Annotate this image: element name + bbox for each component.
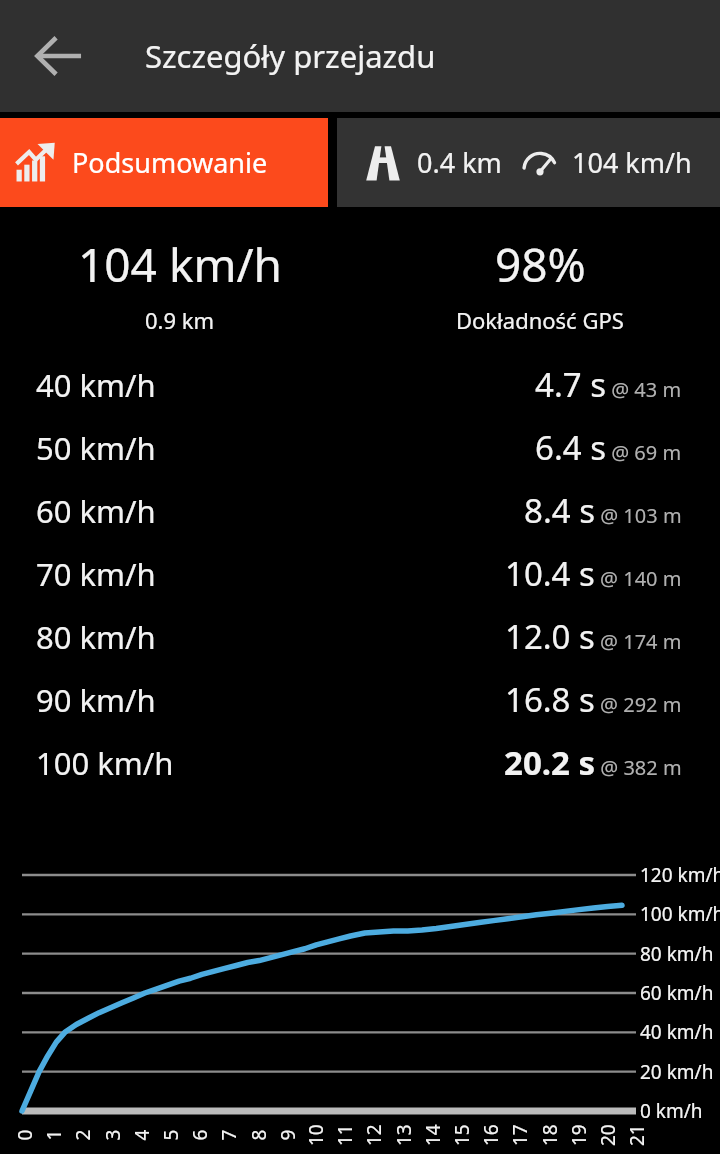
staticText: 100 km/h [640,901,720,927]
staticText: 60 km/h [640,980,714,1006]
staticText: 14 [420,1124,446,1146]
button[interactable]: Podsumowanie [0,118,328,207]
staticText: 4.7 s @ 43 m [535,362,682,407]
staticText: 120 km/h [640,862,720,888]
staticText: 12 [361,1124,387,1146]
staticText: 18 [537,1124,563,1146]
staticText: 8 [245,1129,271,1140]
staticText: 70 km/h [36,553,156,595]
staticText: 5 [157,1129,183,1140]
staticText: 20 [595,1124,621,1146]
staticText: 11 [332,1124,358,1146]
staticText: 12.0 s @ 174 m [505,614,682,659]
staticText: 17 [507,1124,533,1146]
button[interactable]: 40 km/h [0,353,720,416]
staticText: 9 [274,1129,300,1140]
staticText: 0.4 km [417,144,502,181]
staticText: 80 km/h [640,941,714,967]
staticText: 16.8 s @ 292 m [505,677,682,722]
staticText: 50 km/h [36,427,156,469]
staticText: 1 [40,1129,66,1140]
staticText: 40 km/h [640,1019,714,1045]
staticText: 20.2 s @ 382 m [504,740,682,785]
staticText: 0 [11,1129,37,1140]
staticText: 8.4 s @ 103 m [524,488,682,533]
button[interactable]: 0.4 km [337,118,720,207]
staticText: 20 km/h [640,1059,714,1085]
staticText: 4 [128,1129,154,1140]
staticText: Szczegóły przejazdu [145,35,436,77]
staticText: 15 [449,1124,475,1146]
button[interactable]: 70 km/h [0,542,720,605]
staticText: 3 [99,1129,125,1140]
staticText: Dokładność GPS [456,305,624,335]
button[interactable]: 90 km/h [0,668,720,731]
staticText: 6 [186,1129,212,1140]
staticText: 100 km/h [36,742,174,784]
staticText: 0 km/h [640,1098,703,1124]
staticText: 40 km/h [36,364,156,406]
staticText: 6.4 s @ 69 m [535,425,682,470]
staticText: 21 [624,1124,650,1146]
staticText: 0.9 km [145,305,215,335]
staticText: 104 km/h [572,144,692,181]
staticText: 10.4 s @ 140 m [505,551,682,596]
staticText: Podsumowanie [72,144,268,181]
staticText: 13 [391,1124,417,1146]
staticText: 19 [566,1124,592,1146]
staticText: 2 [69,1129,95,1140]
button[interactable]: Back [14,12,102,100]
button[interactable]: 50 km/h [0,416,720,479]
staticText: 98% [495,233,586,296]
staticText: 104 km/h [78,233,283,296]
button[interactable]: 100 km/h [0,731,720,794]
staticText: 90 km/h [36,679,156,721]
button[interactable]: 60 km/h [0,479,720,542]
staticText: 7 [215,1129,241,1140]
staticText: 10 [303,1124,329,1146]
staticText: 80 km/h [36,616,156,658]
staticText: 60 km/h [36,490,156,532]
button[interactable]: 80 km/h [0,605,720,668]
staticText: 16 [478,1124,504,1146]
